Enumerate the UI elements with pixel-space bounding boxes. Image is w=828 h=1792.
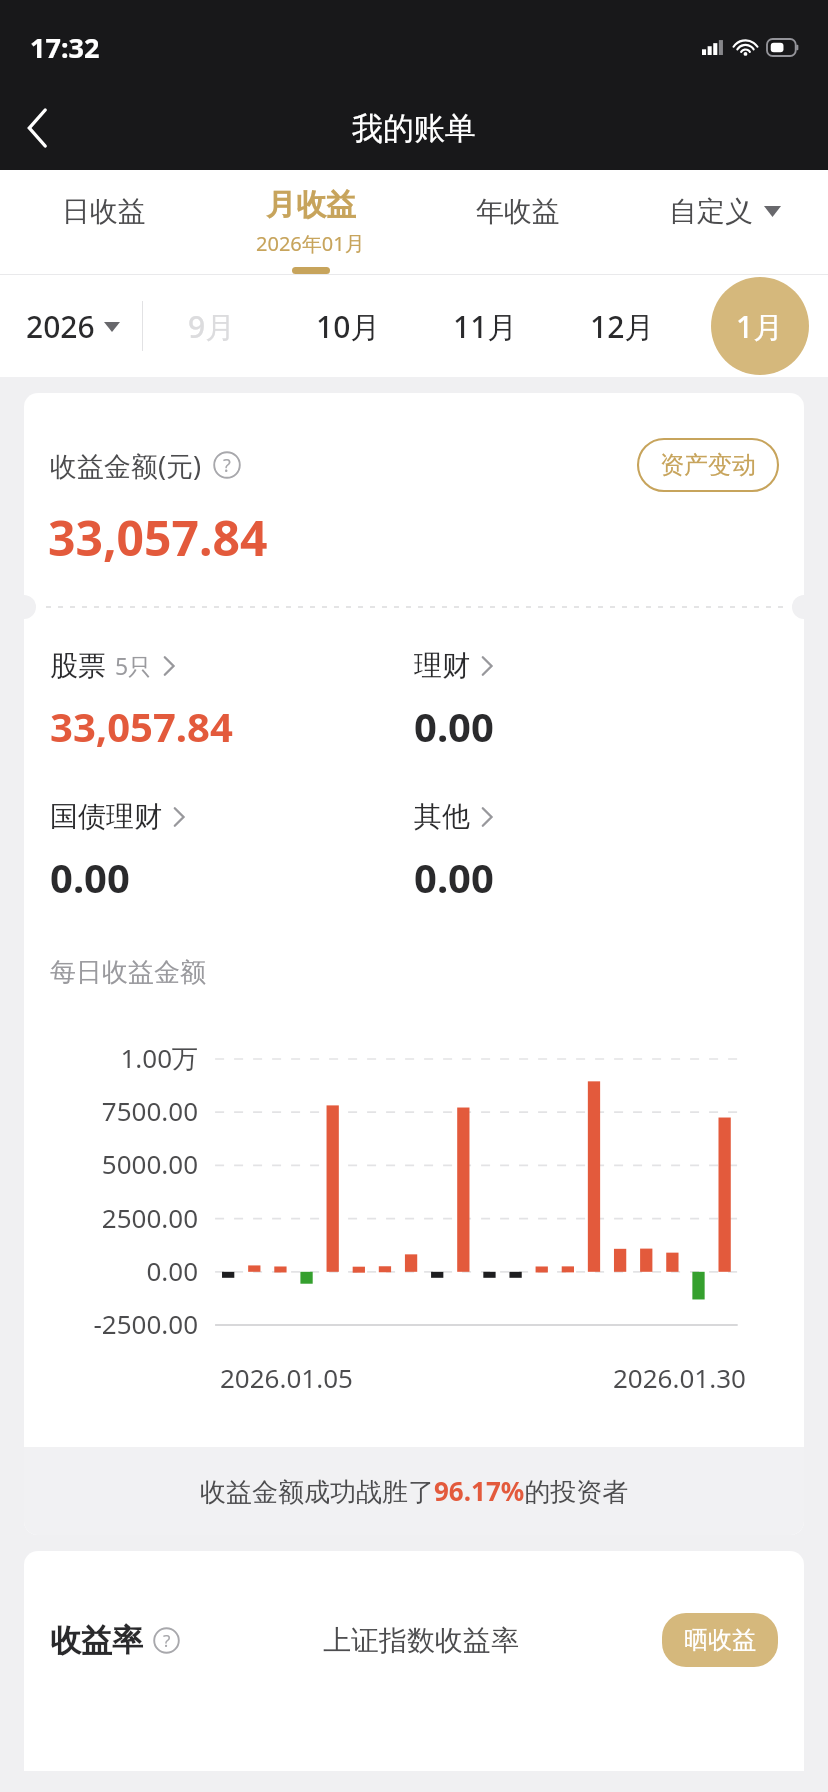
staticText: 0.00 (414, 699, 494, 753)
staticText: 5只 (115, 650, 152, 681)
staticText: 资产变动 (660, 450, 756, 480)
staticText: 2026 (26, 306, 95, 347)
staticText: ? (163, 1629, 171, 1652)
button[interactable]: 12月 (554, 275, 691, 377)
staticText: 国债理财 (50, 799, 162, 834)
staticText: 0.00 (50, 850, 130, 904)
staticText: 上证指数收益率 (323, 1623, 519, 1658)
staticText: 年收益 (476, 194, 560, 229)
staticText: 7500.00 (24, 1093, 198, 1128)
staticText: 1月 (736, 306, 784, 347)
staticText: 2500.00 (24, 1200, 198, 1235)
button[interactable]: 年收益 (414, 170, 621, 274)
button[interactable]: 2026 (26, 306, 120, 347)
staticText: 2026.01.05 (220, 1360, 353, 1395)
staticText: -2500.00 (24, 1306, 198, 1341)
staticText: 1.00万 (24, 1040, 198, 1076)
staticText: 0.00 (414, 850, 494, 904)
staticText: 收益金额(元) (50, 447, 202, 484)
staticText: 股票 (50, 648, 106, 683)
button[interactable]: 月收益 (207, 170, 414, 274)
button[interactable]: 1月 (691, 275, 828, 377)
staticText: ? (223, 453, 231, 478)
button[interactable]: 日收益 (0, 170, 207, 274)
staticText: 11月 (453, 306, 518, 347)
button[interactable]: 国债理财 (50, 799, 414, 904)
button[interactable]: 10月 (280, 275, 417, 377)
staticText: 晒收益 (684, 1625, 756, 1655)
button[interactable]: 9月 (143, 275, 280, 377)
staticText: 理财 (414, 648, 470, 683)
staticText: 月收益 (266, 186, 356, 224)
staticText: 收益率 (50, 1621, 143, 1660)
staticText: 每日收益金额 (50, 956, 206, 989)
button[interactable]: 资产变动 (638, 439, 778, 491)
staticText: 自定义 (669, 194, 753, 229)
staticText: 收益金额成功战胜了96.17%的投资者 (200, 1473, 629, 1509)
button[interactable]: 晒收益 (662, 1613, 778, 1667)
staticText: 2026年01月 (256, 230, 365, 257)
staticText: 33,057.84 (50, 699, 233, 753)
button[interactable]: 其他 (414, 799, 778, 904)
staticText: 我的账单 (352, 109, 476, 148)
button[interactable]: 11月 (417, 275, 554, 377)
button[interactable]: Back (0, 86, 76, 170)
staticText: 17:32 (30, 29, 100, 66)
button[interactable]: 股票 (50, 648, 414, 753)
staticText: 日收益 (62, 194, 146, 229)
staticText: 12月 (590, 306, 655, 347)
button[interactable]: 自定义 (621, 170, 828, 274)
button[interactable]: 理财 (414, 648, 778, 753)
staticText: 9月 (188, 306, 236, 347)
staticText: 33,057.84 (48, 505, 268, 570)
staticText: 5000.00 (24, 1146, 198, 1181)
staticText: 其他 (414, 799, 470, 834)
staticText: 2026.01.30 (613, 1360, 746, 1395)
staticText: 0.00 (24, 1253, 198, 1288)
staticText: 10月 (316, 306, 381, 347)
